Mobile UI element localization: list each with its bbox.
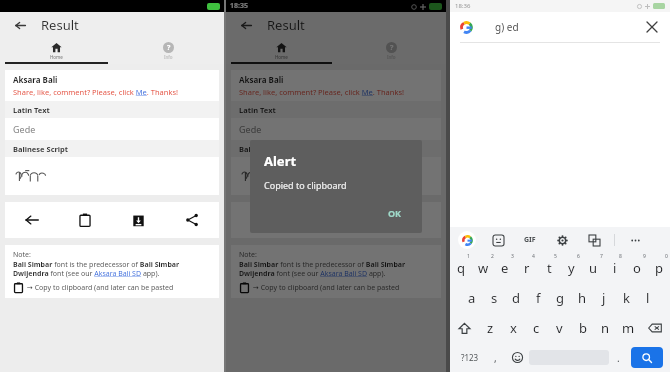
button[interactable]: Translate: [586, 232, 602, 248]
button[interactable]: l: [637, 283, 659, 313]
button[interactable]: More: [627, 232, 643, 248]
button[interactable]: Search: [631, 347, 663, 368]
staticText: 18:35: [230, 1, 248, 11]
button[interactable]: Note:: [5, 245, 219, 298]
button[interactable]: k: [615, 283, 637, 313]
button[interactable]: g) ed: [450, 12, 670, 42]
button[interactable]: ?: [336, 38, 446, 64]
button[interactable]: Copy to clipboard: [58, 202, 111, 238]
button[interactable]: Latin Text: [231, 101, 441, 118]
button[interactable]: s: [483, 283, 505, 313]
button[interactable]: Home: [226, 38, 336, 64]
button[interactable]: ,: [486, 343, 505, 372]
staticText: f: [536, 289, 541, 307]
button[interactable]: Back: [237, 16, 255, 34]
staticText: i: [613, 259, 617, 277]
button[interactable]: v: [548, 313, 571, 343]
button[interactable]: [231, 157, 441, 195]
staticText: Result: [267, 16, 305, 34]
staticText: GIF: [524, 235, 536, 245]
button[interactable]: OK: [382, 205, 408, 221]
button[interactable]: Save: [111, 202, 165, 238]
button[interactable]: j: [593, 283, 615, 313]
button[interactable]: p: [648, 253, 670, 283]
button[interactable]: g: [549, 283, 571, 313]
staticText: 18:36: [455, 2, 471, 10]
button[interactable]: [5, 157, 219, 195]
staticText: 5: [554, 253, 557, 260]
staticText: z: [487, 319, 494, 337]
staticText: Note:: [239, 250, 257, 260]
staticText: Bali Simbar font is the predecessor of B…: [13, 260, 211, 278]
staticText: 6: [577, 253, 580, 260]
button[interactable]: f: [527, 283, 549, 313]
button[interactable]: Back: [11, 16, 29, 34]
button[interactable]: t: [538, 253, 560, 283]
staticText: Latin Text: [13, 105, 50, 115]
button[interactable]: Copy to clipboard: [283, 202, 335, 238]
button[interactable]: Back: [5, 202, 58, 238]
button[interactable]: Gede: [231, 118, 441, 140]
button[interactable]: a: [461, 283, 483, 313]
staticText: Copied to clipboard: [264, 179, 347, 191]
button[interactable]: Latin Text: [5, 101, 219, 118]
button[interactable]: o: [626, 253, 648, 283]
staticText: 3: [511, 253, 514, 260]
button[interactable]: y: [560, 253, 582, 283]
button[interactable]: n: [594, 313, 617, 343]
staticText: Balinese Script: [13, 144, 69, 154]
staticText: Home: [275, 54, 288, 60]
button[interactable]: Gede: [5, 118, 219, 140]
staticText: p: [655, 259, 663, 277]
staticText: 0: [665, 253, 668, 260]
button[interactable]: Backspace: [640, 313, 670, 343]
staticText: r: [524, 259, 530, 277]
button[interactable]: q: [450, 253, 472, 283]
button[interactable]: w: [472, 253, 494, 283]
button[interactable]: u: [582, 253, 604, 283]
staticText: y: [568, 259, 575, 277]
button[interactable]: Balinese Script: [231, 140, 441, 157]
staticText: o: [633, 259, 641, 277]
button[interactable]: d: [505, 283, 527, 313]
button[interactable]: Emoji: [505, 343, 529, 372]
button[interactable]: Share: [165, 202, 219, 238]
button[interactable]: ?: [112, 38, 224, 64]
button[interactable]: Settings: [554, 232, 570, 248]
button[interactable]: Balinese Script: [5, 140, 219, 157]
staticText: g: [556, 289, 564, 307]
staticText: ?: [390, 43, 394, 53]
button[interactable]: z: [479, 313, 502, 343]
button[interactable]: GIF: [522, 233, 538, 247]
button[interactable]: Back: [231, 202, 283, 238]
button[interactable]: m: [617, 313, 640, 343]
button[interactable]: c: [525, 313, 548, 343]
button[interactable]: e: [494, 253, 516, 283]
button[interactable]: b: [571, 313, 594, 343]
staticText: x: [510, 319, 517, 337]
staticText: 7: [600, 253, 603, 260]
staticText: 2: [491, 253, 494, 260]
button[interactable]: x: [502, 313, 525, 343]
button[interactable]: Save: [335, 202, 388, 238]
staticText: 4: [532, 253, 535, 260]
button[interactable]: Aksara Bali: [5, 70, 219, 101]
button[interactable]: i: [604, 253, 626, 283]
staticText: n: [601, 319, 610, 337]
button[interactable]: r: [516, 253, 538, 283]
button[interactable]: Share: [388, 202, 441, 238]
staticText: Bali Simbar font is the predecessor of B…: [239, 260, 433, 278]
button[interactable]: Clear: [644, 19, 660, 35]
button[interactable]: Home: [0, 38, 112, 64]
button[interactable]: Google: [458, 231, 476, 249]
button[interactable]: ?123: [454, 343, 486, 372]
button[interactable]: Emoji: [490, 232, 506, 248]
staticText: u: [589, 259, 598, 277]
button[interactable]: Aksara Bali: [231, 70, 441, 101]
button[interactable]: .: [609, 343, 628, 372]
button[interactable]: Note:: [231, 245, 441, 298]
button[interactable]: h: [571, 283, 593, 313]
button[interactable]: Shift: [450, 313, 479, 343]
staticText: v: [556, 319, 563, 337]
